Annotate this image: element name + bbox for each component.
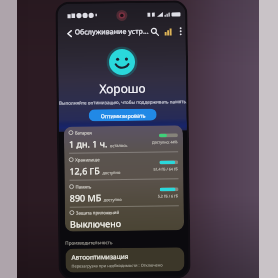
staticText: Выключено bbox=[70, 217, 121, 230]
staticText: доступно bbox=[102, 170, 120, 175]
button[interactable]: Оптимизировать bbox=[89, 109, 157, 121]
staticText: Перезагрузка при необходимости : Отключе… bbox=[71, 262, 164, 269]
staticText: Доступно: 44% bbox=[152, 139, 178, 145]
button[interactable]: Statistics bbox=[162, 25, 174, 37]
staticText: Производительность bbox=[65, 239, 113, 246]
staticText: Хранилище bbox=[75, 156, 100, 163]
button[interactable]: Батарея bbox=[64, 125, 183, 153]
staticText: Выполняйте оптимизацию, чтобы поддержива… bbox=[58, 98, 187, 106]
staticText: Память bbox=[75, 183, 92, 190]
staticText: 890 МБ bbox=[70, 191, 102, 204]
staticText: осталось bbox=[110, 143, 128, 148]
staticText: Батарея bbox=[75, 129, 92, 136]
button[interactable]: Хранилище bbox=[64, 152, 183, 180]
button[interactable]: More options bbox=[175, 25, 186, 37]
staticText: Автооптимизация bbox=[71, 252, 129, 262]
staticText: Обслуживание устр... bbox=[75, 27, 149, 38]
button[interactable]: Автооптимизация bbox=[65, 247, 185, 273]
staticText: Хорошо bbox=[99, 80, 146, 96]
staticText: Защита приложений bbox=[76, 209, 120, 215]
staticText: доступно bbox=[104, 197, 122, 202]
staticText: 12,6 ГБ bbox=[69, 164, 100, 177]
staticText: 1 дн. 1 ч. bbox=[69, 137, 108, 150]
staticText: 5,2 ГБ / 6 ГБ bbox=[158, 193, 179, 199]
button[interactable]: Back bbox=[64, 28, 75, 39]
button[interactable]: Search bbox=[149, 25, 161, 38]
button[interactable]: Защита приложений bbox=[65, 206, 184, 232]
button[interactable]: Память bbox=[64, 179, 184, 207]
staticText: 51,4 ГБ / 64 ГБ bbox=[153, 166, 178, 172]
staticText: Оптимизировать bbox=[101, 112, 146, 119]
